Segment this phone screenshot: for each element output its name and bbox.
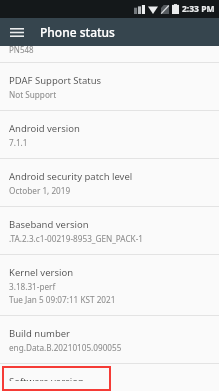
button[interactable]: Android version bbox=[0, 111, 219, 158]
staticText: Android version bbox=[9, 122, 80, 135]
staticText: Kernel version bbox=[9, 266, 74, 279]
staticText: October 1, 2019 bbox=[9, 185, 71, 196]
staticText: Software version bbox=[9, 375, 84, 381]
button[interactable]: PN548 bbox=[0, 46, 219, 62]
staticText: Build number bbox=[9, 327, 71, 340]
staticText: 2:33 PM bbox=[182, 3, 215, 15]
staticText: Android security patch level bbox=[9, 170, 133, 183]
button[interactable]: Software version bbox=[0, 364, 219, 391]
staticText: 3.18.31-perf bbox=[9, 281, 56, 292]
button[interactable]: Open navigation menu bbox=[7, 22, 27, 42]
staticText: Phone status bbox=[40, 24, 115, 40]
staticText: eng.Data.B.20210105.090055 bbox=[9, 342, 122, 353]
staticText: 7.1.1 bbox=[9, 137, 28, 148]
staticText: PDAF Support Status bbox=[9, 74, 102, 87]
button[interactable]: Android security patch level bbox=[0, 159, 219, 206]
button[interactable]: Baseband version bbox=[0, 207, 219, 254]
staticText: Tue Jan 5 09:07:11 KST 2021 bbox=[9, 294, 116, 305]
staticText: .TA.2.3.c1-00219-8953_GEN_PACK-1 bbox=[9, 233, 143, 244]
staticText: Not Support bbox=[9, 89, 57, 100]
button[interactable]: Build number bbox=[0, 316, 219, 363]
button[interactable]: PDAF Support Status bbox=[0, 63, 219, 110]
button[interactable]: Kernel version bbox=[0, 255, 219, 315]
staticText: Baseband version bbox=[9, 218, 89, 231]
staticText: PN548 bbox=[9, 44, 34, 55]
